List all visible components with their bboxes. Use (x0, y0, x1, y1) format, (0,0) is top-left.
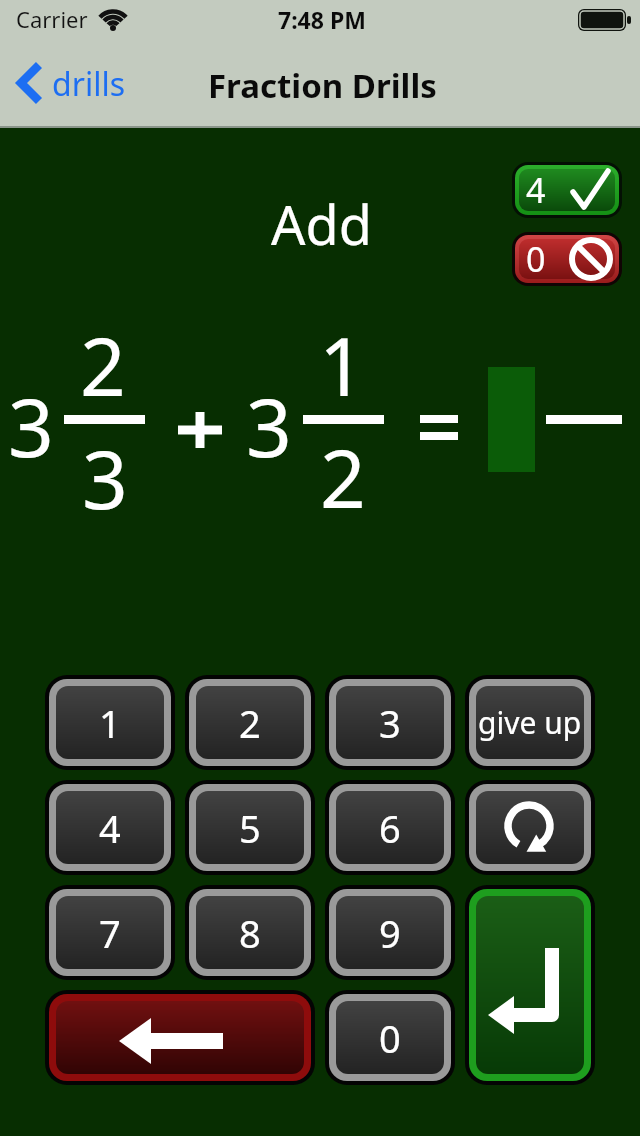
staticText: 3 (82, 423, 128, 532)
button[interactable]: 4 (45, 780, 175, 875)
staticText: 6 (379, 802, 401, 854)
button[interactable]: 3 (325, 675, 455, 770)
button[interactable]: drills (46, 62, 130, 106)
button[interactable] (16, 62, 44, 104)
staticText: Fraction Drills (208, 63, 437, 108)
button[interactable]: 6 (325, 780, 455, 875)
staticText: 3 (246, 371, 292, 480)
staticText: 2 (320, 422, 366, 531)
button[interactable]: 2 (185, 675, 315, 770)
staticText: 5 (239, 802, 261, 854)
button[interactable] (465, 885, 595, 1085)
staticText: 2 (239, 697, 261, 749)
button[interactable]: 0 (325, 990, 455, 1085)
staticText: drills (52, 62, 125, 106)
button[interactable]: 8 (185, 885, 315, 980)
button[interactable]: 7 (45, 885, 175, 980)
staticText: 4 (526, 167, 546, 213)
button[interactable]: 1 (45, 675, 175, 770)
staticText: 1 (319, 310, 365, 419)
button[interactable]: give up (465, 675, 595, 770)
staticText: 1 (99, 697, 121, 749)
staticText: 7:48 PM (278, 4, 366, 35)
staticText: 9 (379, 907, 401, 959)
staticText: 0 (526, 236, 546, 282)
staticText: 4 (99, 802, 121, 854)
staticText: 2 (80, 310, 126, 419)
button[interactable] (45, 990, 315, 1085)
staticText: Add (271, 187, 372, 261)
staticText: 8 (239, 907, 261, 959)
button[interactable]: 0 (512, 232, 622, 286)
button[interactable]: 9 (325, 885, 455, 980)
staticText: 3 (8, 371, 54, 480)
button[interactable] (465, 780, 595, 875)
staticText: give up (478, 702, 582, 743)
staticText: 0 (379, 1012, 401, 1064)
staticText: Carrier (16, 4, 88, 34)
staticText: 7 (99, 907, 121, 959)
staticText: 3 (379, 697, 401, 749)
button[interactable]: 5 (185, 780, 315, 875)
button[interactable]: 4 (512, 162, 622, 218)
